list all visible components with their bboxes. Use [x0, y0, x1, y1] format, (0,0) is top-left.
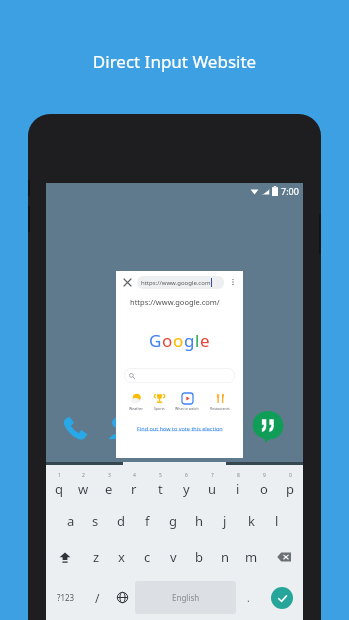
staticText: m — [245, 548, 258, 566]
button[interactable]: . — [236, 575, 261, 620]
staticText: x — [118, 548, 125, 566]
staticText: Direct Input Website — [0, 50, 349, 73]
staticText: g — [169, 512, 177, 530]
button[interactable]: 1 — [46, 467, 71, 503]
staticText: u — [208, 480, 217, 498]
button[interactable]: d — [108, 503, 134, 539]
staticText: Sports — [154, 406, 165, 411]
staticText: h — [195, 512, 204, 530]
staticText: v — [170, 548, 177, 566]
button[interactable]: 8 — [225, 467, 251, 503]
staticText: o — [260, 480, 268, 498]
staticText: English — [172, 592, 200, 603]
staticText: 7 — [211, 472, 214, 479]
button[interactable]: Shift — [46, 539, 84, 575]
button[interactable]: b — [186, 539, 212, 575]
staticText: https://www.google.com — [141, 279, 211, 287]
staticText: ?123 — [57, 592, 75, 603]
button[interactable]: https://www.google.com — [137, 276, 224, 289]
staticText: / — [95, 590, 100, 606]
button[interactable]: Hangouts — [251, 409, 285, 443]
button[interactable]: f — [134, 503, 160, 539]
button[interactable]: https://www.google.com/ — [116, 293, 243, 311]
button[interactable]: / — [85, 575, 110, 620]
staticText: t — [158, 480, 163, 498]
staticText: a — [67, 512, 75, 530]
staticText: l — [195, 329, 200, 352]
button[interactable]: 3 — [96, 467, 121, 503]
button[interactable]: v — [160, 539, 186, 575]
staticText: y — [183, 480, 190, 498]
staticText: 8 — [237, 472, 240, 479]
button[interactable]: k — [238, 503, 264, 539]
button[interactable]: Enter — [271, 587, 293, 609]
button[interactable]: a — [58, 503, 83, 539]
button[interactable]: x — [109, 539, 134, 575]
button[interactable]: z — [84, 539, 109, 575]
staticText: 7:00 — [281, 185, 299, 197]
staticText: e — [200, 329, 210, 352]
button[interactable] — [124, 368, 235, 383]
staticText: o — [162, 329, 173, 352]
staticText: 2 — [82, 472, 85, 479]
button[interactable]: Close — [121, 276, 133, 288]
button[interactable]: English — [135, 581, 236, 614]
staticText: What to watch — [175, 406, 199, 411]
button[interactable]: Change language — [110, 575, 135, 620]
staticText: j — [223, 512, 227, 530]
button[interactable]: j — [212, 503, 238, 539]
button[interactable]: 0 — [277, 467, 303, 503]
staticText: 1 — [58, 472, 61, 479]
button[interactable]: 2 — [71, 467, 96, 503]
button[interactable]: 4 — [121, 467, 147, 503]
staticText: c — [144, 548, 151, 566]
staticText: 9 — [263, 472, 266, 479]
staticText: G — [149, 329, 162, 352]
button[interactable]: m — [238, 539, 264, 575]
staticText: Weather — [129, 406, 143, 411]
button[interactable]: 6 — [173, 467, 199, 503]
staticText: f — [145, 512, 150, 530]
button[interactable]: 9 — [251, 467, 277, 503]
staticText: i — [236, 480, 240, 498]
staticText: p — [286, 480, 294, 498]
staticText: q — [55, 480, 63, 498]
staticText: o — [173, 329, 184, 352]
button[interactable]: More options — [228, 277, 238, 287]
staticText: k — [248, 512, 255, 530]
staticText: 0 — [289, 472, 292, 479]
button[interactable]: g — [160, 503, 186, 539]
staticText: 4 — [133, 472, 136, 479]
button[interactable]: n — [212, 539, 238, 575]
button[interactable]: c — [134, 539, 160, 575]
staticText: . — [247, 591, 250, 605]
staticText: s — [92, 512, 99, 530]
other: Phone — [62, 415, 88, 441]
staticText: https://www.google.com/ — [130, 297, 220, 307]
staticText: w — [78, 480, 89, 498]
button[interactable]: 7 — [199, 467, 225, 503]
button[interactable]: What to watch — [173, 391, 201, 413]
staticText: b — [195, 548, 203, 566]
staticText: r — [131, 480, 137, 498]
button[interactable]: Weather — [127, 391, 145, 413]
button[interactable]: Find out how to vote this election — [137, 425, 223, 432]
button[interactable]: ?123 — [46, 575, 85, 620]
staticText: 5 — [159, 472, 162, 479]
staticText: n — [221, 548, 230, 566]
button[interactable]: Restaurants — [208, 391, 232, 413]
button[interactable]: Sports — [152, 391, 167, 413]
button[interactable]: Backspace — [264, 539, 303, 575]
staticText: 6 — [185, 472, 188, 479]
staticText: d — [117, 512, 125, 530]
button[interactable]: h — [186, 503, 212, 539]
staticText: Restaurants — [210, 406, 230, 411]
staticText: e — [105, 480, 113, 498]
staticText: l — [275, 512, 279, 530]
staticText: z — [93, 548, 100, 566]
staticText: g — [184, 329, 195, 352]
button[interactable]: s — [83, 503, 108, 539]
button[interactable]: l — [264, 503, 290, 539]
staticText: 3 — [108, 472, 111, 479]
button[interactable]: 5 — [147, 467, 173, 503]
